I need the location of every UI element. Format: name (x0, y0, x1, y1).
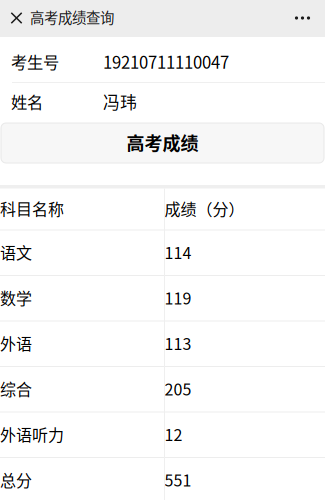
button[interactable]: Close (5, 6, 28, 29)
button[interactable]: 高考成绩 (1, 123, 324, 163)
staticText: 高考成绩查询 (30, 7, 114, 27)
staticText: 114 (164, 240, 191, 264)
staticText: 205 (164, 377, 191, 400)
staticText: 冯玮 (103, 89, 137, 113)
staticText: 12 (164, 422, 182, 446)
staticText: 科目名称 (0, 197, 64, 220)
staticText: 高考成绩 (126, 129, 198, 156)
staticText: 综合 (0, 377, 32, 400)
staticText: 考生号 (11, 50, 59, 73)
staticText: 551 (164, 468, 191, 491)
staticText: 外语听力 (0, 422, 64, 446)
staticText: 19210711110047 (103, 49, 229, 73)
staticText: 数学 (0, 286, 32, 309)
button[interactable]: More options (291, 6, 314, 29)
staticText: 外语 (0, 331, 32, 355)
staticText: 119 (164, 286, 191, 309)
staticText: 113 (164, 331, 191, 355)
staticText: 总分 (0, 468, 32, 491)
staticText: 姓名 (11, 90, 43, 113)
staticText: 成绩（分） (164, 197, 244, 220)
staticText: 语文 (0, 240, 32, 264)
